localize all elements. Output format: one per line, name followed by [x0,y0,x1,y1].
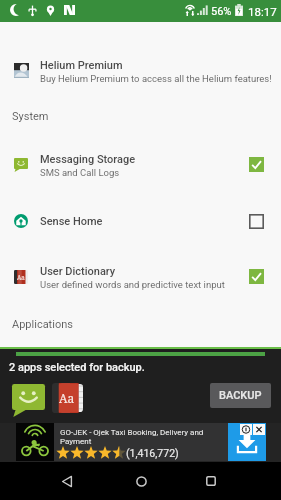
staticText: Buy Helium Premium to access all the Hel… [40,73,272,84]
button[interactable]: Messaging Storage [0,138,281,194]
button[interactable]: Sense Home [0,194,281,250]
staticText: System [12,110,49,123]
staticText: Applications [12,318,73,331]
staticText: User Dictionary [40,265,116,278]
staticText: Aa [17,273,25,281]
staticText: 56% [211,5,232,18]
button[interactable]: BACKUP [210,383,271,408]
staticText: 18:17 [248,5,277,18]
button[interactable]: Back [47,462,87,500]
staticText: Sense Home [40,215,103,228]
staticText: 2 apps selected for backup. [9,361,145,374]
button[interactable]: Helium Premium [0,48,281,93]
staticText: (1,416,772) [126,447,179,459]
staticText: BACKUP [219,389,262,402]
staticText: User defined words and predictive text i… [40,279,225,290]
button[interactable]: Home [121,462,161,500]
staticText: Payment [60,437,92,446]
staticText: Aa [59,390,75,406]
staticText: SMS and Call Logs [40,167,120,178]
button[interactable]: Install app [228,423,266,461]
button[interactable]: Recent apps [191,462,231,500]
staticText: GO-JEK - Ojek Taxi Booking, Delivery and [60,428,204,437]
button[interactable]: Aa [0,250,281,306]
staticText: Helium Premium [40,59,123,72]
staticText: Messaging Storage [40,153,136,166]
